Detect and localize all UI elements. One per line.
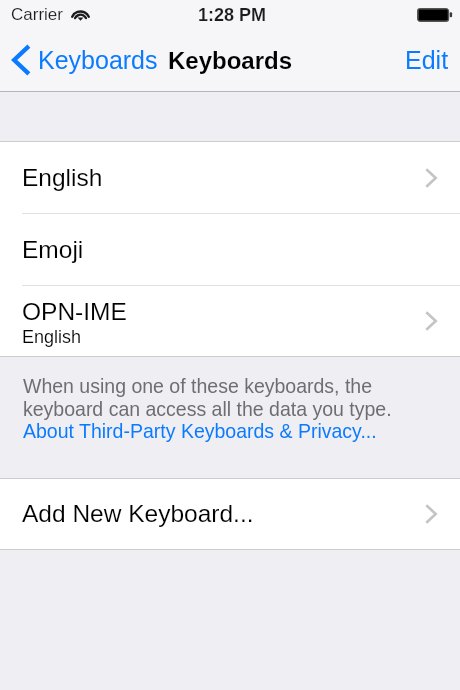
staticText: OPN-IME — [22, 298, 127, 325]
button[interactable]: Back — [0, 36, 170, 84]
button[interactable]: Edit — [394, 37, 460, 83]
button[interactable]: About Third-Party Keyboards & Privacy... — [23, 420, 377, 442]
other: Open — [425, 311, 437, 331]
staticText: When using one of these keyboards, the k… — [23, 375, 392, 420]
staticText: 1:28 PM — [198, 5, 267, 25]
button[interactable]: Add New Keyboard... — [0, 478, 460, 549]
button[interactable]: Emoji — [0, 213, 460, 285]
staticText: Emoji — [22, 236, 84, 263]
other: Open — [425, 504, 437, 524]
staticText: Keyboards — [38, 46, 158, 74]
other: Battery full — [417, 8, 452, 22]
staticText: About Third-Party Keyboards & Privacy... — [23, 420, 377, 442]
staticText: Edit — [405, 46, 449, 74]
staticText: Add New Keyboard... — [22, 500, 254, 527]
staticText: Keyboards — [168, 47, 293, 74]
staticText: Carrier — [11, 5, 63, 24]
staticText: English — [22, 164, 103, 191]
button[interactable]: English — [0, 142, 460, 213]
other: Back — [12, 44, 31, 76]
button[interactable]: OPN-IME — [0, 285, 460, 356]
other: Open — [425, 168, 437, 188]
staticText: English — [22, 327, 82, 347]
other: Wi-Fi signal — [71, 8, 90, 21]
